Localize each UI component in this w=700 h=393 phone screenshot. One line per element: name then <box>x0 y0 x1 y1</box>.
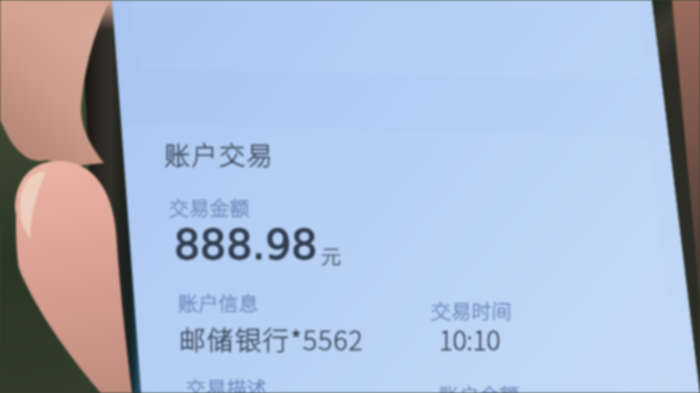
staticText: 邮储银行*5562 <box>179 319 364 357</box>
button[interactable]: 账户信息 <box>178 288 259 317</box>
button[interactable]: 888.98 <box>174 221 318 269</box>
button[interactable]: 账户余额 <box>439 380 520 393</box>
button[interactable]: 元 <box>321 241 341 270</box>
staticText: 账户交易 <box>164 135 275 173</box>
button[interactable]: 10:10 <box>439 319 501 357</box>
staticText: 888.98 <box>174 221 318 269</box>
staticText: 交易描述 <box>186 373 267 393</box>
staticText: 账户信息 <box>178 288 259 317</box>
button[interactable]: 账户交易 <box>164 135 275 173</box>
button[interactable]: 交易时间 <box>431 296 512 325</box>
button[interactable]: 交易金额 <box>169 193 250 222</box>
staticText: 交易时间 <box>431 296 512 325</box>
staticText: 账户余额 <box>439 380 520 393</box>
staticText: 10:10 <box>439 319 501 357</box>
button[interactable]: 交易描述 <box>186 373 267 393</box>
button[interactable]: 邮储银行*5562 <box>179 319 364 357</box>
staticText: 元 <box>321 241 341 270</box>
staticText: 交易金额 <box>169 193 250 222</box>
